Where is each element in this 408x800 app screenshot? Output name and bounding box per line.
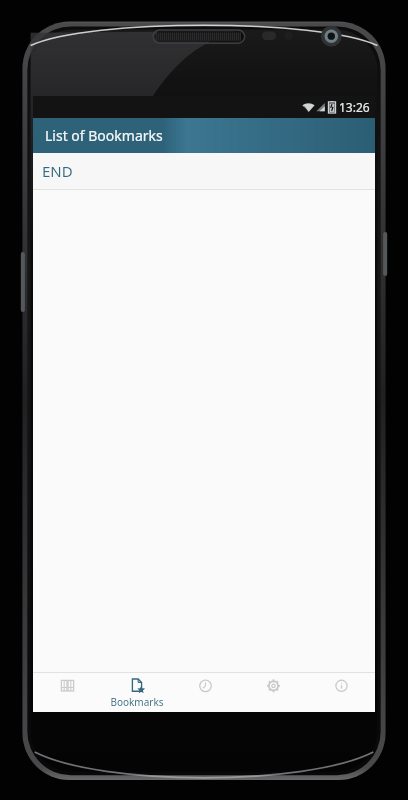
staticText: Bookmarks [110,695,164,709]
button[interactable]: Library [33,673,102,712]
button[interactable]: History [171,673,239,712]
staticText: List of Bookmarks [45,126,163,145]
button[interactable]: Bookmarks [102,673,171,712]
button[interactable]: List of Bookmarks [33,118,375,153]
button[interactable]: Settings [239,673,307,712]
button[interactable]: END [33,153,375,189]
button[interactable]: Info [307,673,375,712]
staticText: 13:26 [339,99,370,115]
staticText: END [42,161,73,181]
